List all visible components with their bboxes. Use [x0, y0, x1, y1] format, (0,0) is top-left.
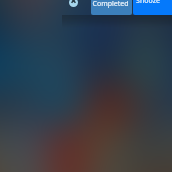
button[interactable]: Snooze	[133, 0, 172, 15]
button[interactable]: Dismiss	[69, 0, 78, 7]
button[interactable]: Completed	[91, 0, 132, 15]
staticText: Snooze	[136, 0, 160, 6]
staticText: Completed	[92, 0, 129, 9]
